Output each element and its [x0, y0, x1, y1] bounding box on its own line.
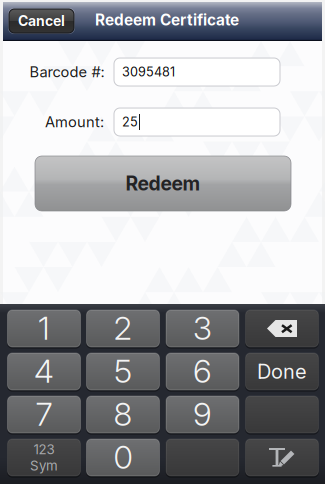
button[interactable]: 123: [7, 439, 80, 476]
button[interactable]: Redeem: [35, 156, 291, 211]
staticText: Amount:: [45, 113, 104, 131]
staticText: Barcode #:: [29, 63, 104, 81]
button[interactable]: 5: [86, 353, 159, 390]
button[interactable]: 3: [166, 310, 239, 347]
staticText: 8: [113, 395, 132, 433]
staticText: Sym: [30, 457, 58, 474]
staticText: Done: [257, 359, 307, 384]
button[interactable]: 2: [86, 310, 159, 347]
staticText: 4: [34, 352, 54, 390]
button[interactable]: Cancel: [7, 7, 76, 35]
staticText: 2: [113, 309, 132, 347]
staticText: 123: [33, 441, 54, 457]
button[interactable]: 8: [86, 396, 159, 433]
button[interactable]: 1: [7, 310, 80, 347]
staticText: Cancel: [18, 12, 65, 29]
button[interactable]: 9: [166, 396, 239, 433]
button[interactable]: 0: [86, 439, 159, 476]
staticText: 3095481: [122, 64, 175, 80]
staticText: 6: [193, 352, 212, 390]
staticText: 5: [114, 352, 132, 390]
button[interactable]: 4: [7, 353, 80, 390]
button[interactable]: Space: [166, 439, 239, 476]
staticText: 3: [193, 309, 212, 347]
staticText: 7: [35, 395, 52, 433]
staticText: 9: [193, 395, 212, 433]
staticText: Redeem: [125, 172, 200, 195]
staticText: 0: [113, 438, 132, 476]
button[interactable]: 7: [7, 396, 80, 433]
button[interactable]: Handwriting: [245, 439, 318, 476]
button[interactable]: More: [245, 396, 318, 433]
staticText: 1: [38, 309, 50, 347]
button[interactable]: 6: [166, 353, 239, 390]
staticText: 25: [122, 114, 138, 130]
button[interactable]: Delete: [245, 310, 318, 347]
staticText: Redeem Certificate: [95, 11, 239, 29]
button[interactable]: Done: [245, 353, 318, 390]
